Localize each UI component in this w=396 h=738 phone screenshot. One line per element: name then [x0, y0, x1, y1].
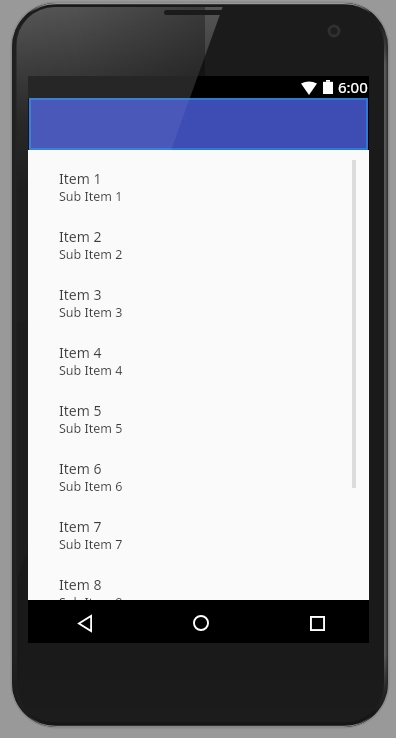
- staticText: Sub Item 3: [59, 304, 123, 321]
- staticText: Item 4: [59, 343, 102, 362]
- staticText: Item 7: [59, 517, 102, 536]
- staticText: Item 6: [59, 459, 102, 478]
- staticText: Sub Item 8: [59, 594, 123, 600]
- button[interactable]: Home: [144, 600, 257, 643]
- staticText: Sub Item 7: [59, 536, 123, 553]
- staticText: Sub Item 1: [59, 188, 123, 205]
- staticText: Item 3: [59, 285, 102, 304]
- button[interactable]: Item 1: [28, 150, 369, 208]
- button[interactable]: Back: [28, 600, 141, 643]
- button[interactable]: Item 2: [28, 208, 369, 266]
- button[interactable]: Item 5: [28, 382, 369, 440]
- button[interactable]: Toolbar: [31, 100, 366, 148]
- button[interactable]: Item 4: [28, 324, 369, 382]
- button[interactable]: Item 7: [28, 498, 369, 556]
- staticText: Sub Item 2: [59, 246, 123, 263]
- button[interactable]: Item 3: [28, 266, 369, 324]
- staticText: 6:00: [338, 77, 368, 97]
- staticText: Item 5: [59, 401, 102, 420]
- staticText: Item 2: [59, 227, 102, 246]
- staticText: Sub Item 5: [59, 420, 123, 437]
- staticText: Item 8: [59, 575, 102, 594]
- staticText: Sub Item 4: [59, 362, 123, 379]
- button[interactable]: Item 6: [28, 440, 369, 498]
- button[interactable]: Recents: [261, 600, 374, 643]
- button[interactable]: Item 8: [28, 556, 369, 600]
- staticText: Item 1: [59, 169, 102, 188]
- staticText: Sub Item 6: [59, 478, 123, 495]
